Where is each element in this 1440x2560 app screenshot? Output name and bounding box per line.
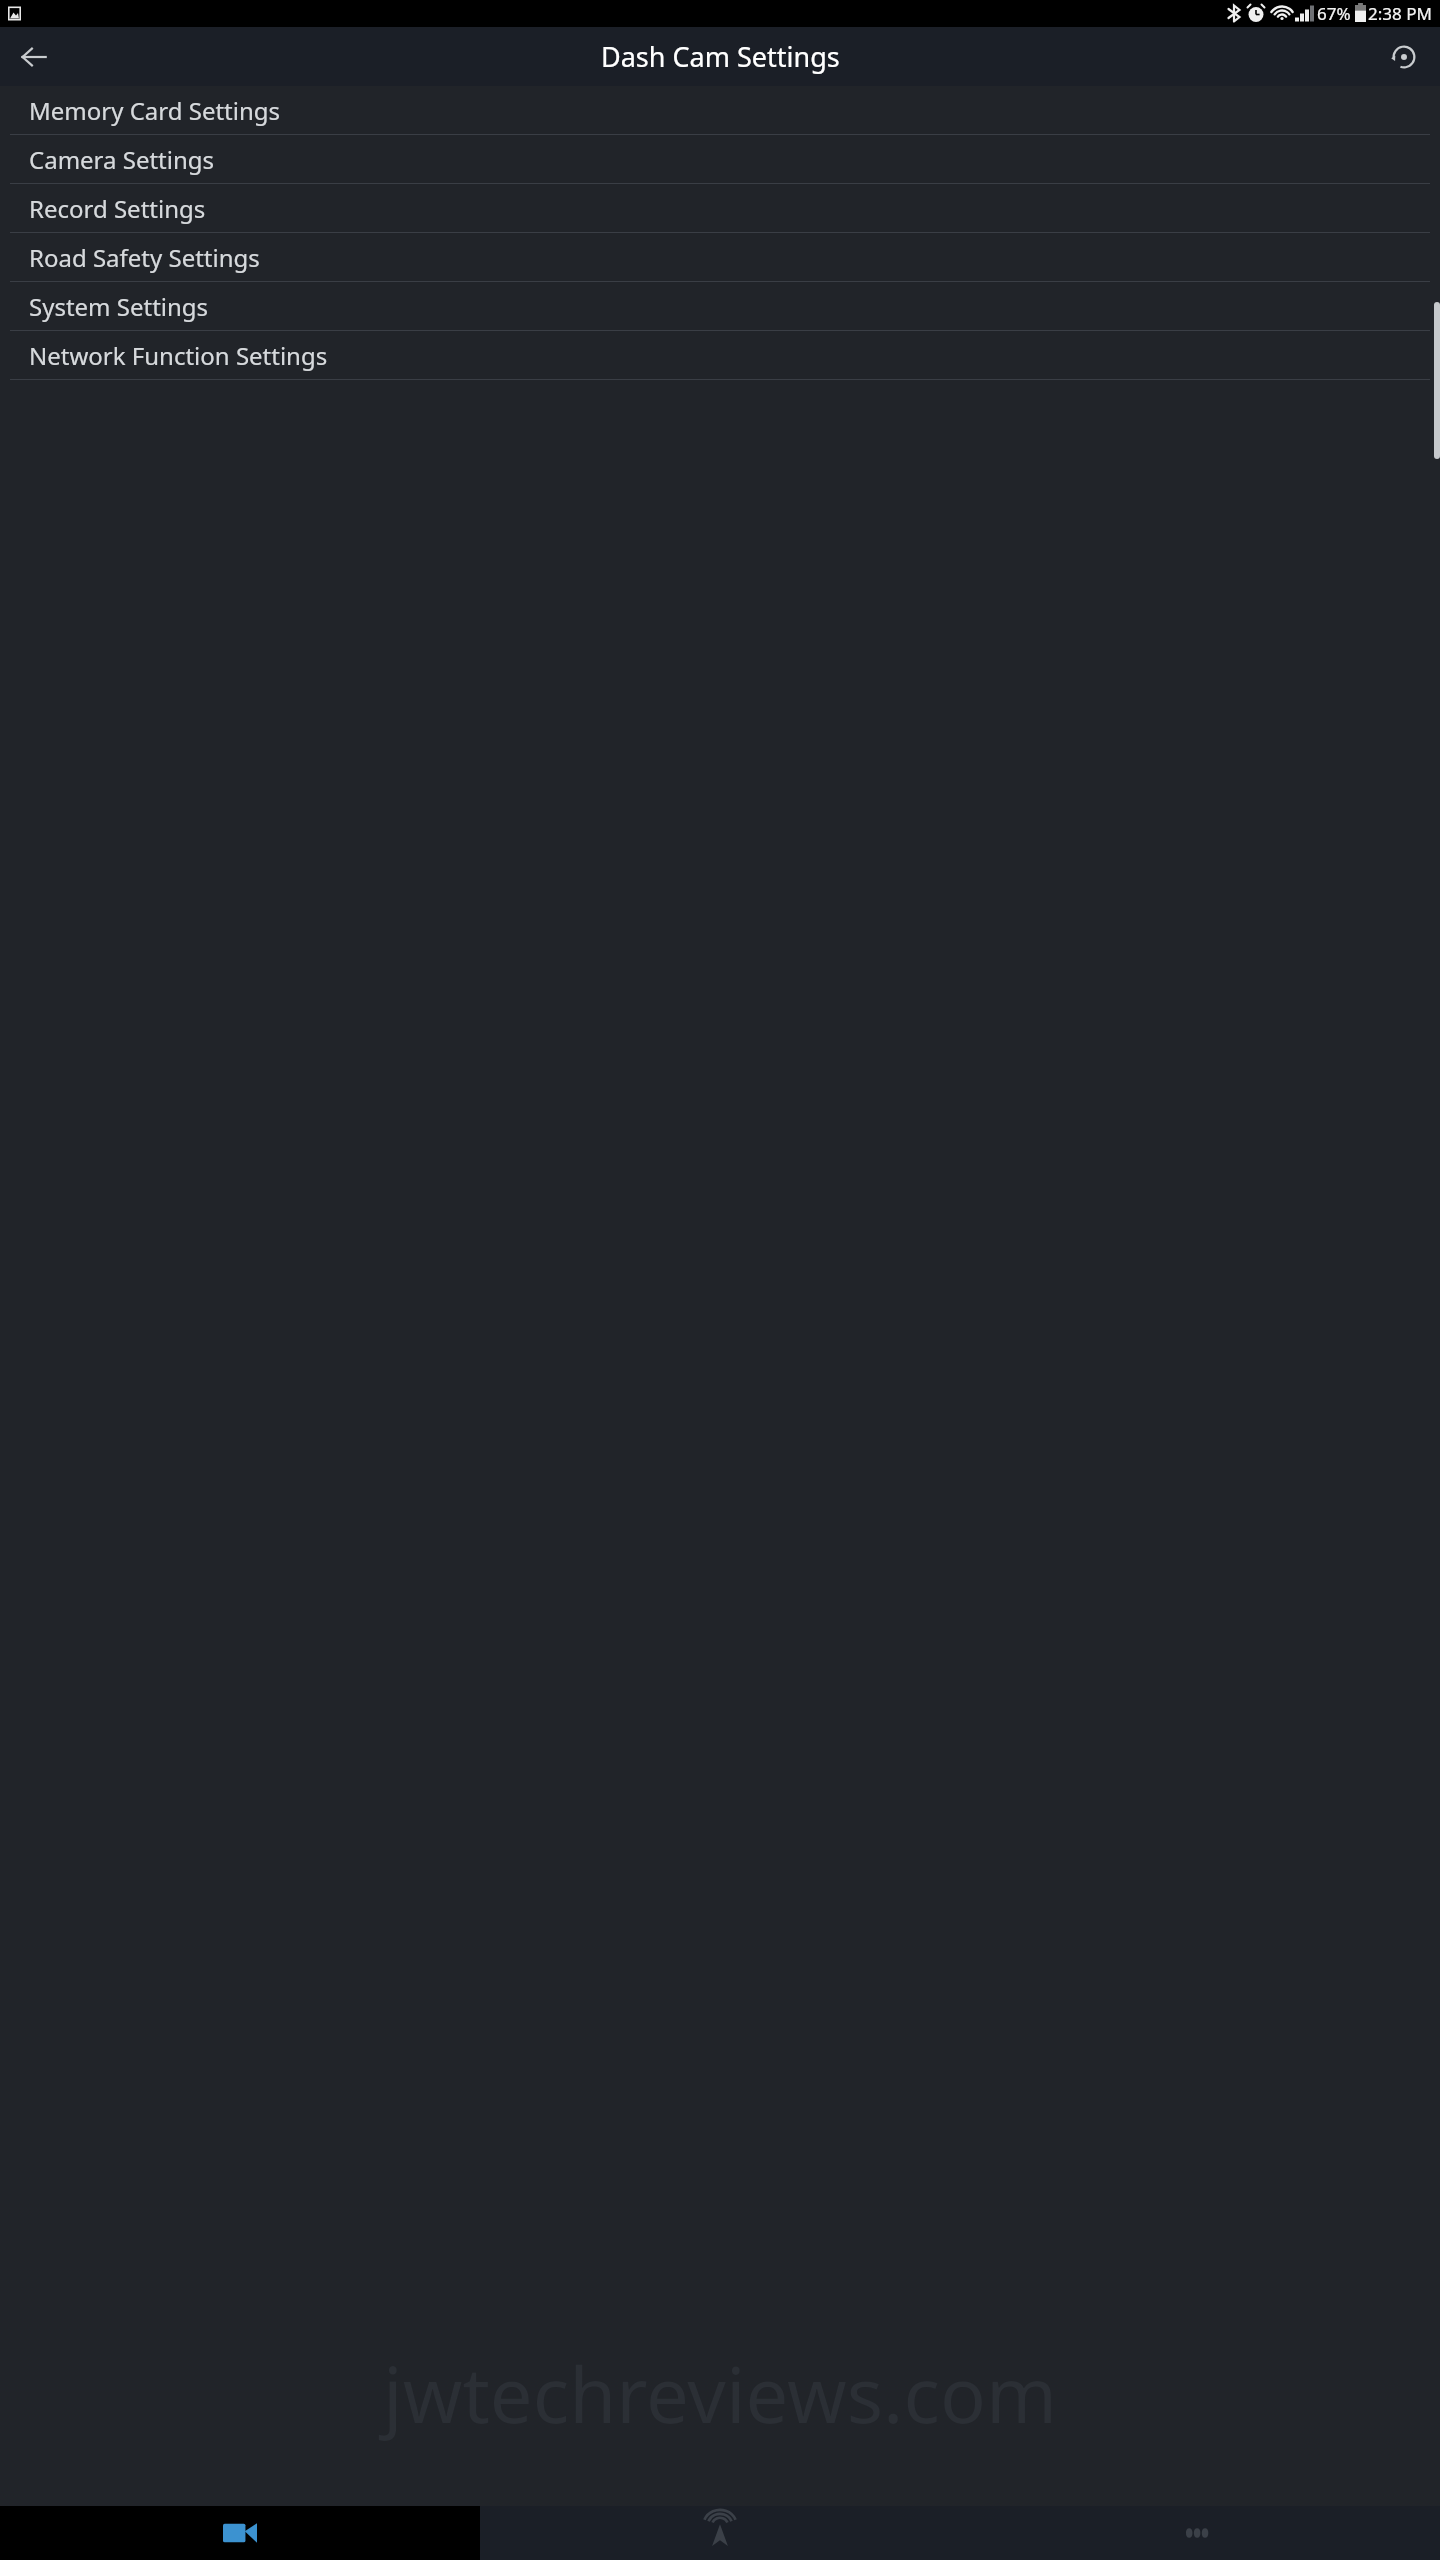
button[interactable]: Memory Card Settings [0, 86, 1440, 135]
staticText: 67% [1317, 2, 1351, 25]
button[interactable]: Record Settings [0, 184, 1440, 233]
button[interactable]: Back [10, 33, 58, 81]
button[interactable]: Reset [1380, 33, 1428, 81]
staticText: Camera Settings [29, 143, 215, 176]
staticText: 2:38 PM [1368, 2, 1432, 25]
button[interactable]: System Settings [0, 282, 1440, 331]
button[interactable]: Live [480, 2506, 960, 2560]
staticText: Network Function Settings [29, 339, 328, 372]
staticText: Memory Card Settings [29, 94, 281, 127]
button[interactable]: Network Function Settings [0, 331, 1440, 380]
staticText: Record Settings [29, 192, 206, 225]
staticText: System Settings [29, 290, 209, 323]
button[interactable]: Record [0, 2506, 480, 2560]
button[interactable]: Road Safety Settings [0, 233, 1440, 282]
button[interactable]: Camera Settings [0, 135, 1440, 184]
staticText: Road Safety Settings [29, 241, 260, 274]
staticText: Dash Cam Settings [601, 38, 840, 75]
